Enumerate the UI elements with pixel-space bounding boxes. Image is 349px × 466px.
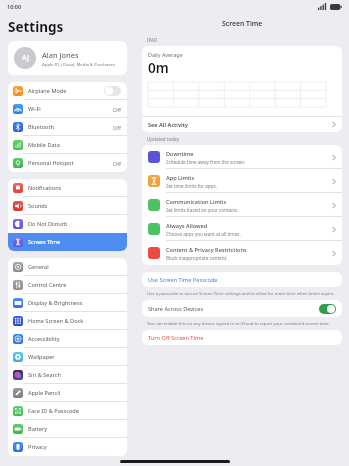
staticText: Control Centre (28, 281, 67, 289)
staticText: Set limits based on your contacts. (166, 207, 239, 213)
staticText: Notifications (28, 184, 62, 192)
staticText: App Limits (166, 174, 195, 182)
button[interactable]: Bluetooth (8, 118, 127, 136)
button[interactable]: App Limits (142, 169, 342, 193)
staticText: Block inappropriate content. (166, 255, 228, 261)
staticText: Set time limits for apps. (166, 183, 217, 189)
staticText: You can enable this on any device signed… (147, 320, 330, 326)
staticText: Sounds (28, 202, 48, 210)
staticText: Apple Pencil (28, 389, 61, 397)
button[interactable]: AJ (8, 41, 127, 75)
staticText: Privacy (28, 443, 47, 451)
button[interactable]: Display & Brightness (8, 294, 127, 312)
other: Open (332, 154, 336, 161)
button[interactable]: Control Centre (8, 276, 127, 294)
button[interactable]: Airplane Mode (8, 82, 127, 100)
staticText: Downtime (166, 150, 194, 158)
staticText: Screen Time (222, 19, 263, 28)
staticText: Daily Average (148, 51, 183, 58)
button[interactable]: Share Across Devices (142, 300, 342, 317)
staticText: See All Activity (148, 121, 188, 129)
staticText: Alan Jones (42, 50, 79, 60)
staticText: Content & Privacy Restrictions (166, 246, 247, 254)
staticText: Schedule time away from the screen. (166, 159, 246, 165)
button[interactable]: Notifications (8, 179, 127, 197)
other: Open (332, 226, 336, 233)
staticText: Turn Off Screen Time (148, 334, 204, 342)
staticText: Mobile Data (28, 141, 60, 149)
button[interactable]: Downtime (142, 145, 342, 169)
button[interactable]: Communication Limits (142, 193, 342, 217)
staticText: 0m (148, 59, 169, 77)
button[interactable]: Content & Privacy Restrictions (142, 241, 342, 265)
staticText: AJ (22, 53, 29, 63)
staticText: Off (113, 160, 121, 167)
staticText: Do Not Disturb (28, 220, 68, 228)
staticText: Personal Hotspot (28, 159, 74, 167)
button[interactable]: Turn Off Screen Time (142, 330, 342, 345)
button[interactable]: Siri & Search (8, 366, 127, 384)
button[interactable]: See All Activity (142, 117, 342, 132)
staticText: Apple ID, iCloud, Media & Purchases (42, 61, 115, 67)
staticText: Use Screen Time Passcode (148, 276, 218, 284)
button[interactable]: Face ID & Passcode (8, 402, 127, 420)
staticText: Settings (8, 18, 64, 36)
other: Open (332, 250, 336, 257)
staticText: Accessibility (28, 335, 60, 343)
staticText: IPAD (147, 37, 158, 43)
staticText: Siri & Search (28, 371, 61, 379)
other: Open (332, 202, 336, 209)
button[interactable]: Battery (8, 420, 127, 438)
staticText: Communication Limits (166, 198, 227, 206)
other: Open (332, 178, 336, 185)
staticText: Home Screen & Dock (28, 317, 84, 325)
staticText: General (28, 263, 49, 271)
button[interactable]: Personal Hotspot (8, 154, 127, 172)
staticText: Share Across Devices (148, 305, 204, 313)
button[interactable]: Screen Time (8, 233, 127, 251)
button[interactable]: Mobile Data (8, 136, 127, 154)
button[interactable]: Sounds (8, 197, 127, 215)
button[interactable]: Always Allowed (142, 217, 342, 241)
button[interactable]: Use Screen Time Passcode (142, 272, 342, 287)
staticText: Use a passcode to secure Screen Time set… (147, 290, 335, 296)
other: Open (332, 121, 336, 128)
staticText: Wallpaper (28, 353, 55, 361)
staticText: Bluetooth (28, 123, 54, 131)
staticText: Off (113, 124, 121, 131)
staticText: Off (113, 106, 121, 113)
staticText: Battery (28, 425, 48, 433)
staticText: Updated today (147, 136, 180, 142)
button[interactable]: Home Screen & Dock (8, 312, 127, 330)
staticText: 10:00 (7, 3, 22, 10)
staticText: Airplane Mode (28, 87, 67, 95)
staticText: Wi-Fi (28, 105, 41, 113)
staticText: Always Allowed (166, 222, 208, 230)
button[interactable]: Apple Pencil (8, 384, 127, 402)
staticText: Choose apps you want at all times. (166, 231, 241, 237)
staticText: Face ID & Passcode (28, 407, 79, 415)
button[interactable]: Privacy (8, 438, 127, 456)
button[interactable]: Do Not Disturb (8, 215, 127, 233)
button[interactable]: Wallpaper (8, 348, 127, 366)
staticText: Display & Brightness (28, 299, 83, 307)
staticText: Screen Time (28, 238, 61, 246)
button[interactable]: General (8, 258, 127, 276)
button[interactable]: Accessibility (8, 330, 127, 348)
button[interactable]: Wi-Fi (8, 100, 127, 118)
